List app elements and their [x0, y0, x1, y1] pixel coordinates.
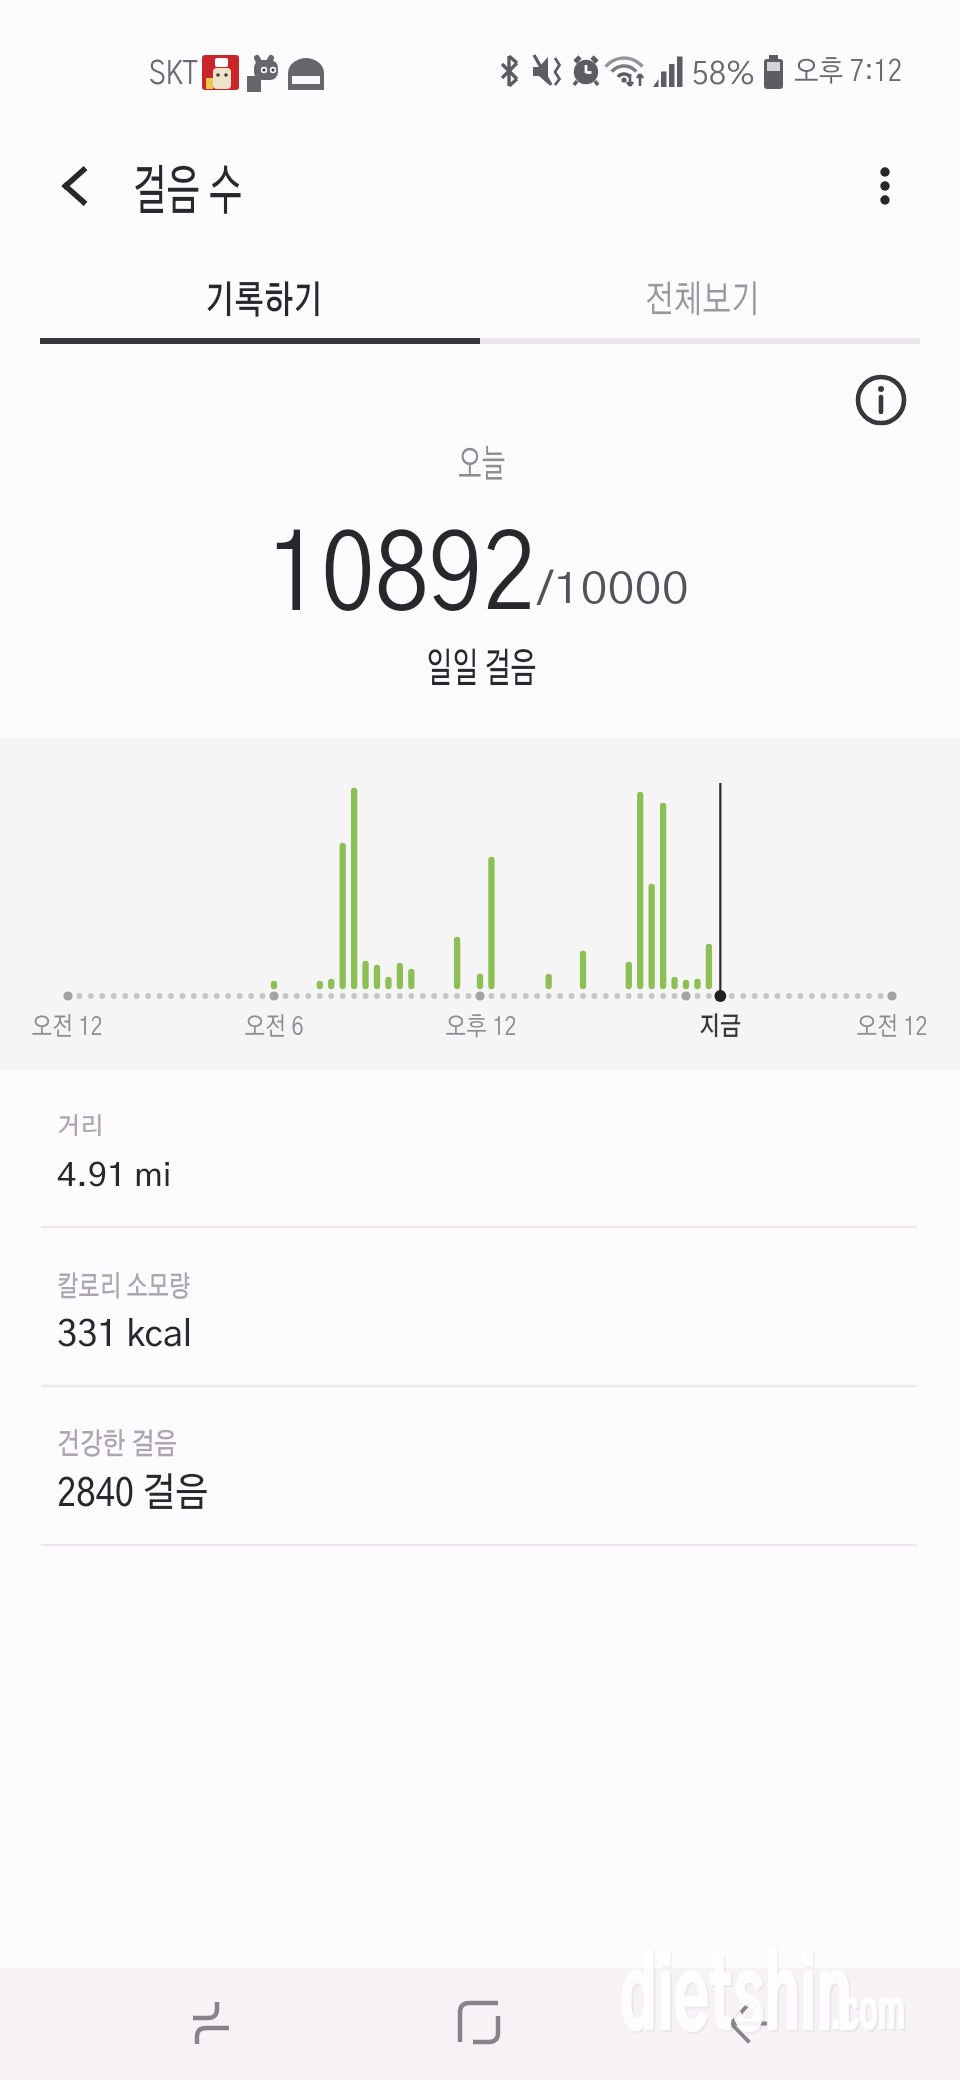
staticText: 4.91 mi — [57, 1160, 172, 1193]
button[interactable]: Back — [24, 136, 124, 236]
button[interactable]: More options — [838, 136, 938, 236]
staticText: 건강한 걸음 — [57, 1430, 178, 1460]
staticText: .com — [830, 1988, 906, 2040]
staticText: .com — [832, 1990, 908, 2042]
staticText: 거리 — [57, 1115, 104, 1139]
button[interactable]: 거리 — [0, 1070, 960, 1227]
button[interactable]: Information — [836, 355, 926, 445]
staticText: 지금 — [637, 1014, 803, 1040]
staticText: dietshin — [620, 1951, 852, 2050]
staticText: dietshin — [622, 1953, 854, 2052]
staticText: 오전 6 — [191, 1014, 357, 1040]
button[interactable]: Back — [670, 1968, 830, 2080]
staticText: 오전 12 — [809, 1014, 960, 1040]
staticText: 오후 7:12 — [794, 57, 903, 87]
staticText: 전체보기 — [645, 282, 761, 320]
staticText: 칼로리 소모량 — [57, 1273, 191, 1302]
staticText: 오전 12 — [0, 1014, 150, 1040]
staticText: 58% — [692, 59, 756, 90]
staticText: 오늘 — [458, 446, 505, 485]
button[interactable]: 기록하기 — [40, 246, 480, 344]
button[interactable]: 건강한 걸음 — [0, 1388, 960, 1545]
staticText: 기록하기 — [205, 283, 323, 321]
button[interactable]: 전체보기 — [480, 246, 920, 344]
staticText: 일일 걸음 — [426, 649, 537, 690]
staticText: 걸음 수 — [133, 166, 242, 220]
button[interactable]: Recent apps — [130, 1968, 290, 2080]
button[interactable]: Home — [400, 1968, 560, 2080]
button[interactable]: 칼로리 소모량 — [0, 1229, 960, 1386]
staticText: SKT — [149, 58, 198, 91]
staticText: 2840 걸음 — [57, 1474, 209, 1514]
staticText: /10000 — [537, 569, 689, 611]
staticText: 10892 — [267, 524, 537, 630]
staticText: 331 kcal — [57, 1318, 193, 1353]
staticText: 오후 12 — [398, 1014, 564, 1040]
